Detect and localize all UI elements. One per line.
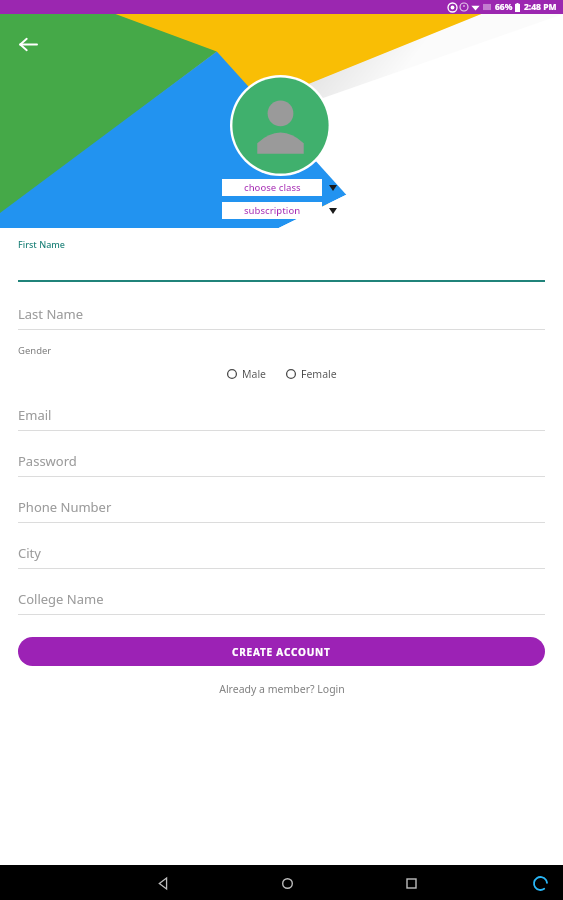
staticText: choose class <box>244 181 301 194</box>
staticText: Email <box>18 406 52 424</box>
button[interactable]: Assistant <box>527 870 553 896</box>
button[interactable]: Phone Number <box>18 499 545 523</box>
staticText: City <box>18 544 41 562</box>
staticText: Already a member? Login <box>219 682 345 696</box>
button[interactable]: Recents <box>398 870 424 896</box>
button[interactable]: Female <box>286 367 337 381</box>
button[interactable]: Home <box>274 870 300 896</box>
button[interactable]: Back <box>10 27 44 61</box>
button[interactable]: Male <box>227 367 267 381</box>
button[interactable]: Email <box>18 407 545 431</box>
staticText: Male <box>242 367 267 381</box>
button[interactable]: CREATE ACCOUNT <box>18 637 545 666</box>
button[interactable]: Last Name <box>18 306 545 330</box>
staticText: Password <box>18 452 77 470</box>
button[interactable]: Back <box>150 870 176 896</box>
button[interactable]: Profile photo <box>230 75 331 176</box>
staticText: 2:48 PM <box>524 1 557 13</box>
button[interactable]: Already a member? Login <box>18 682 545 696</box>
button[interactable]: subscription <box>222 202 322 219</box>
staticText: Female <box>301 367 337 381</box>
staticText: subscription <box>244 204 301 217</box>
button[interactable]: College Name <box>18 591 545 615</box>
staticText: Phone Number <box>18 498 112 516</box>
staticText: College Name <box>18 590 104 608</box>
button[interactable]: First Name <box>18 238 545 282</box>
button[interactable]: choose class <box>222 179 322 196</box>
staticText: Gender <box>18 344 52 357</box>
button[interactable]: Password <box>18 453 545 477</box>
staticText: Last Name <box>18 305 84 323</box>
staticText: 66% <box>495 1 513 13</box>
button[interactable]: City <box>18 545 545 569</box>
staticText: CREATE ACCOUNT <box>232 645 331 659</box>
staticText: First Name <box>18 238 65 250</box>
